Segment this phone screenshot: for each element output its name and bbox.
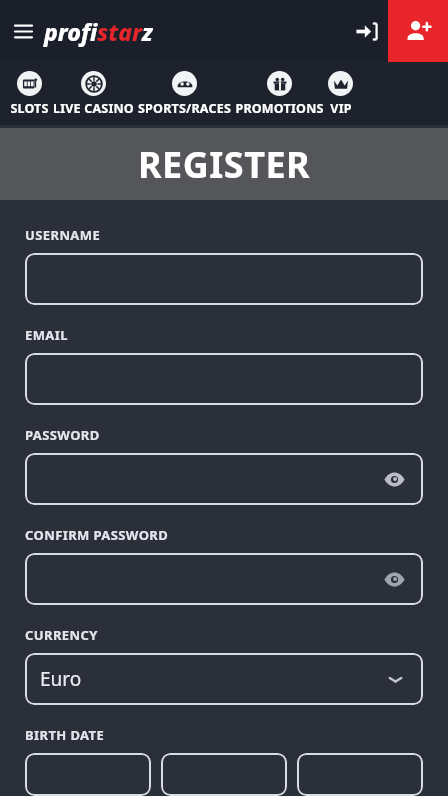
staticText: profistarz (44, 16, 153, 47)
button[interactable]: Menu (6, 14, 40, 48)
staticText: EMAIL (25, 326, 68, 344)
button[interactable]: Euro (25, 653, 423, 705)
button[interactable]: VIP (326, 62, 355, 125)
staticText: REGISTER (138, 140, 311, 189)
staticText: CURRENCY (25, 626, 98, 644)
button[interactable]: SLOTS (8, 62, 51, 125)
button[interactable]: Show password (25, 453, 423, 505)
button[interactable]: LIVE CASINO (51, 62, 136, 125)
button[interactable]: Show password (379, 464, 409, 494)
staticText: PASSWORD (25, 426, 100, 444)
staticText: BIRTH DATE (25, 726, 105, 744)
button[interactable] (25, 253, 423, 305)
staticText: Euro (40, 666, 82, 692)
button[interactable] (297, 753, 423, 796)
staticText: SPORTS/RACES (138, 100, 231, 117)
button[interactable]: profistarz (44, 16, 153, 47)
button[interactable]: Show confirm password (25, 553, 423, 605)
staticText: LIVE CASINO (53, 100, 134, 117)
staticText: SLOTS (10, 100, 49, 117)
button[interactable]: SPORTS/RACES (136, 62, 233, 125)
other: Open currency list (381, 665, 409, 693)
staticText: USERNAME (25, 226, 101, 244)
button[interactable]: Show confirm password (379, 564, 409, 594)
button[interactable]: Log in (344, 0, 388, 62)
staticText: CONFIRM PASSWORD (25, 526, 169, 544)
button[interactable]: PROMOTIONS (233, 62, 326, 125)
button[interactable] (161, 753, 287, 796)
button[interactable] (25, 753, 151, 796)
button[interactable]: Register (388, 0, 448, 62)
staticText: VIP (330, 100, 352, 117)
button[interactable] (25, 353, 423, 405)
staticText: PROMOTIONS (235, 100, 324, 117)
